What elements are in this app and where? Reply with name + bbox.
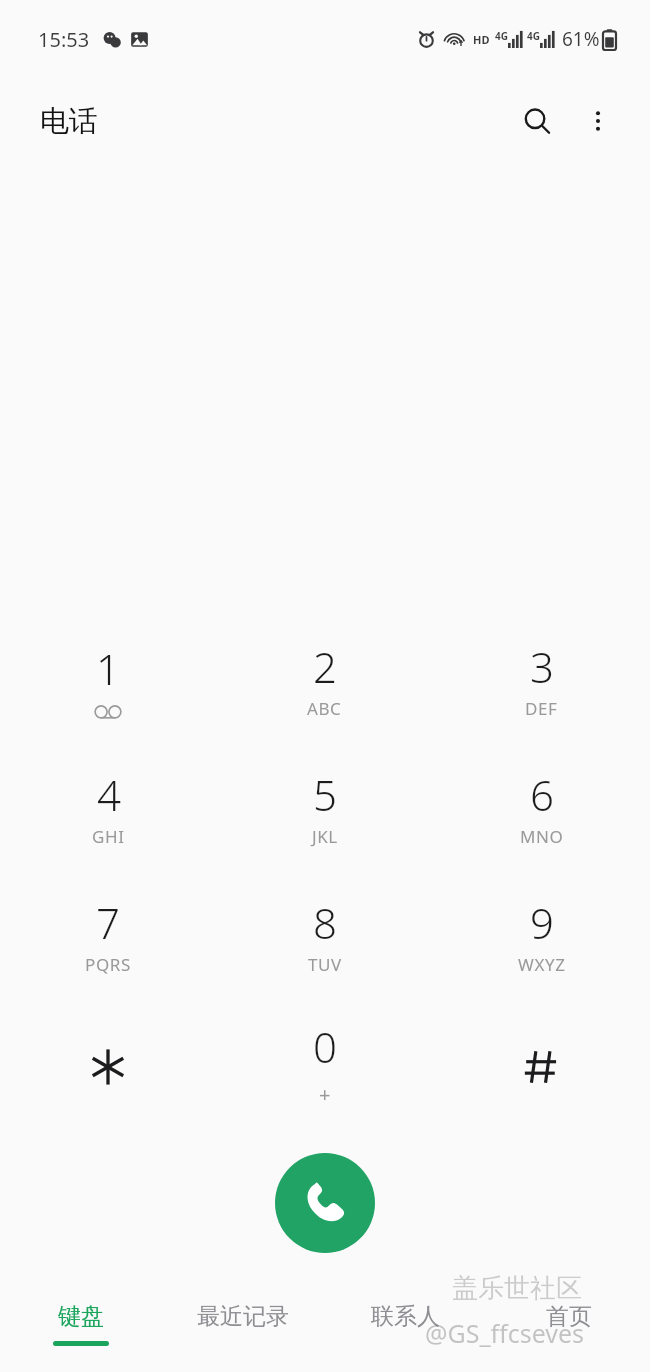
staticText: JKL (312, 825, 338, 848)
staticText: 7 (96, 894, 120, 951)
button[interactable]: 最近记录 (162, 1280, 324, 1372)
staticText: 0 (313, 1018, 337, 1075)
staticText: ABC (307, 697, 342, 720)
staticText: 8 (313, 894, 337, 951)
staticText: WXYZ (518, 953, 566, 976)
button[interactable]: 3 (433, 619, 650, 747)
staticText: 15:53 (38, 26, 90, 53)
staticText: + (319, 1081, 332, 1108)
button[interactable]: 键盘 (0, 1280, 162, 1372)
button[interactable]: 联系人 (324, 1280, 487, 1372)
staticText: 4G (527, 29, 540, 43)
button[interactable]: 6 (433, 747, 650, 875)
button[interactable]: 4 (0, 747, 216, 875)
button[interactable]: 2 (216, 619, 433, 747)
button[interactable]: 9 (433, 875, 650, 1003)
staticText: 电话 (40, 103, 98, 140)
staticText: DEF (525, 697, 558, 720)
staticText: 4 (97, 766, 121, 823)
staticText: MNO (520, 825, 564, 848)
button[interactable]: 1 (0, 619, 216, 747)
staticText: 最近记录 (197, 1302, 289, 1331)
staticText: 4G (495, 29, 508, 43)
button[interactable] (0, 1003, 216, 1131)
button[interactable] (433, 1003, 650, 1131)
staticText: 9 (530, 894, 554, 951)
button[interactable]: 首页 (487, 1280, 650, 1372)
button[interactable]: 7 (0, 875, 216, 1003)
staticText: 61% (562, 26, 600, 52)
button[interactable]: Call (275, 1153, 375, 1253)
staticText: @GS_ffcseves (425, 1316, 585, 1350)
staticText: 联系人 (371, 1302, 440, 1331)
button[interactable]: 0 (216, 1003, 433, 1131)
staticText: 2 (313, 638, 337, 695)
staticText: 键盘 (58, 1302, 104, 1331)
button[interactable]: Search (509, 93, 565, 149)
staticText: 3 (530, 638, 554, 695)
staticText: 首页 (546, 1302, 592, 1331)
staticText: 1 (96, 640, 120, 697)
staticText: 盖乐世社区 (452, 1272, 582, 1305)
staticText: TUV (308, 953, 342, 976)
button[interactable]: 8 (216, 875, 433, 1003)
staticText: 6 (530, 766, 554, 823)
staticText: GHI (92, 825, 125, 848)
staticText: PQRS (85, 953, 131, 976)
staticText: HD (473, 32, 490, 47)
button[interactable]: 5 (216, 747, 433, 875)
button[interactable]: More options (570, 93, 626, 149)
staticText: 5 (313, 766, 337, 823)
